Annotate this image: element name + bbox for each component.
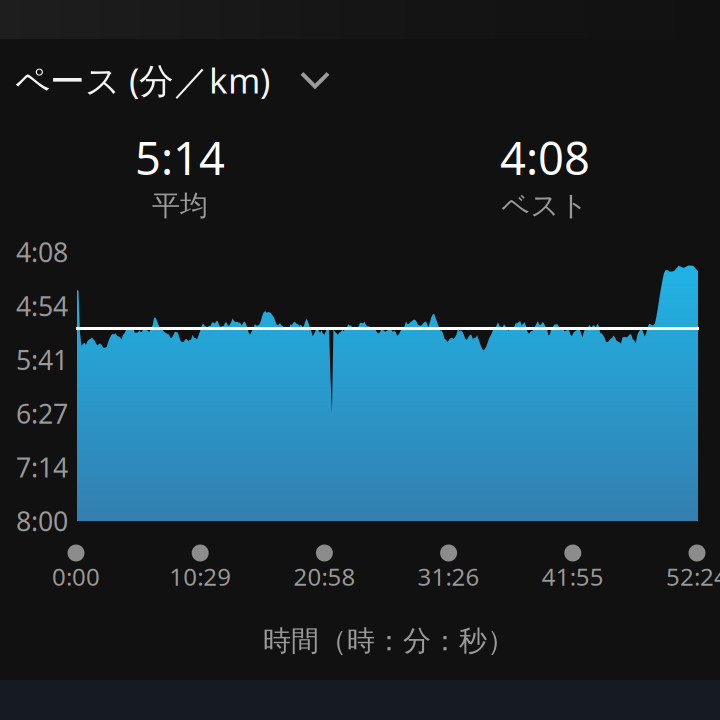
button[interactable]: ペースグラフ (77, 252, 698, 521)
staticText: 10:29 (169, 561, 231, 592)
staticText: 時間（時：分：秒） (263, 624, 515, 658)
staticText: 4:08 (16, 234, 68, 270)
staticText: 8:00 (16, 503, 68, 539)
staticText: 41:55 (542, 561, 604, 592)
staticText: ベスト (501, 188, 588, 223)
staticText: 0:00 (52, 561, 100, 592)
staticText: 4:54 (16, 288, 68, 323)
staticText: 4:08 (500, 127, 590, 187)
staticText: 平均 (152, 188, 208, 223)
staticText: 20:58 (293, 561, 355, 592)
button[interactable]: 4:08 (395, 130, 695, 220)
staticText: 5:41 (16, 342, 68, 377)
staticText: 6:27 (16, 396, 68, 431)
staticText: 5:14 (135, 127, 225, 187)
staticText: 52:24 (666, 561, 720, 592)
staticText: ペース (分／km) (15, 57, 270, 103)
button[interactable]: ペース (分／km) (15, 52, 435, 108)
staticText: 31:26 (418, 561, 480, 592)
button[interactable]: 5:14 (30, 130, 330, 220)
staticText: 7:14 (16, 449, 68, 485)
